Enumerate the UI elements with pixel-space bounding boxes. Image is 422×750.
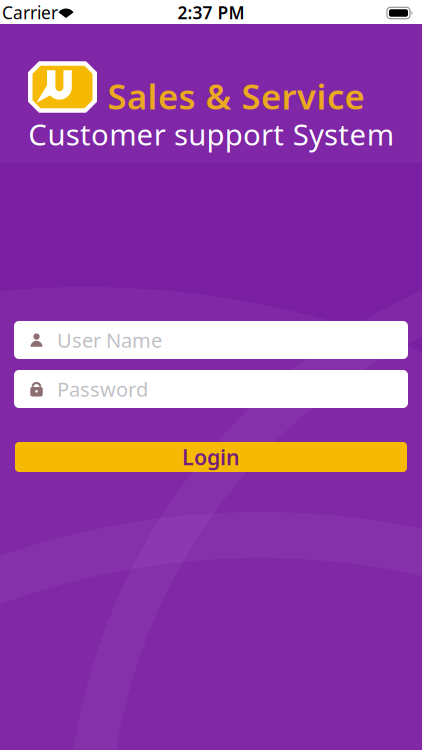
staticText: Customer support System [28,114,394,153]
button[interactable]: User Name text field [14,321,408,359]
staticText: Carrier [2,1,58,24]
staticText: Password [57,376,148,402]
staticText: 2:37 PM [177,1,244,24]
staticText: Sales & Service [107,73,364,119]
button[interactable]: Login [15,442,407,472]
staticText: User Name [57,327,162,353]
staticText: Login [182,443,240,471]
button[interactable]: Password text field [14,370,408,408]
